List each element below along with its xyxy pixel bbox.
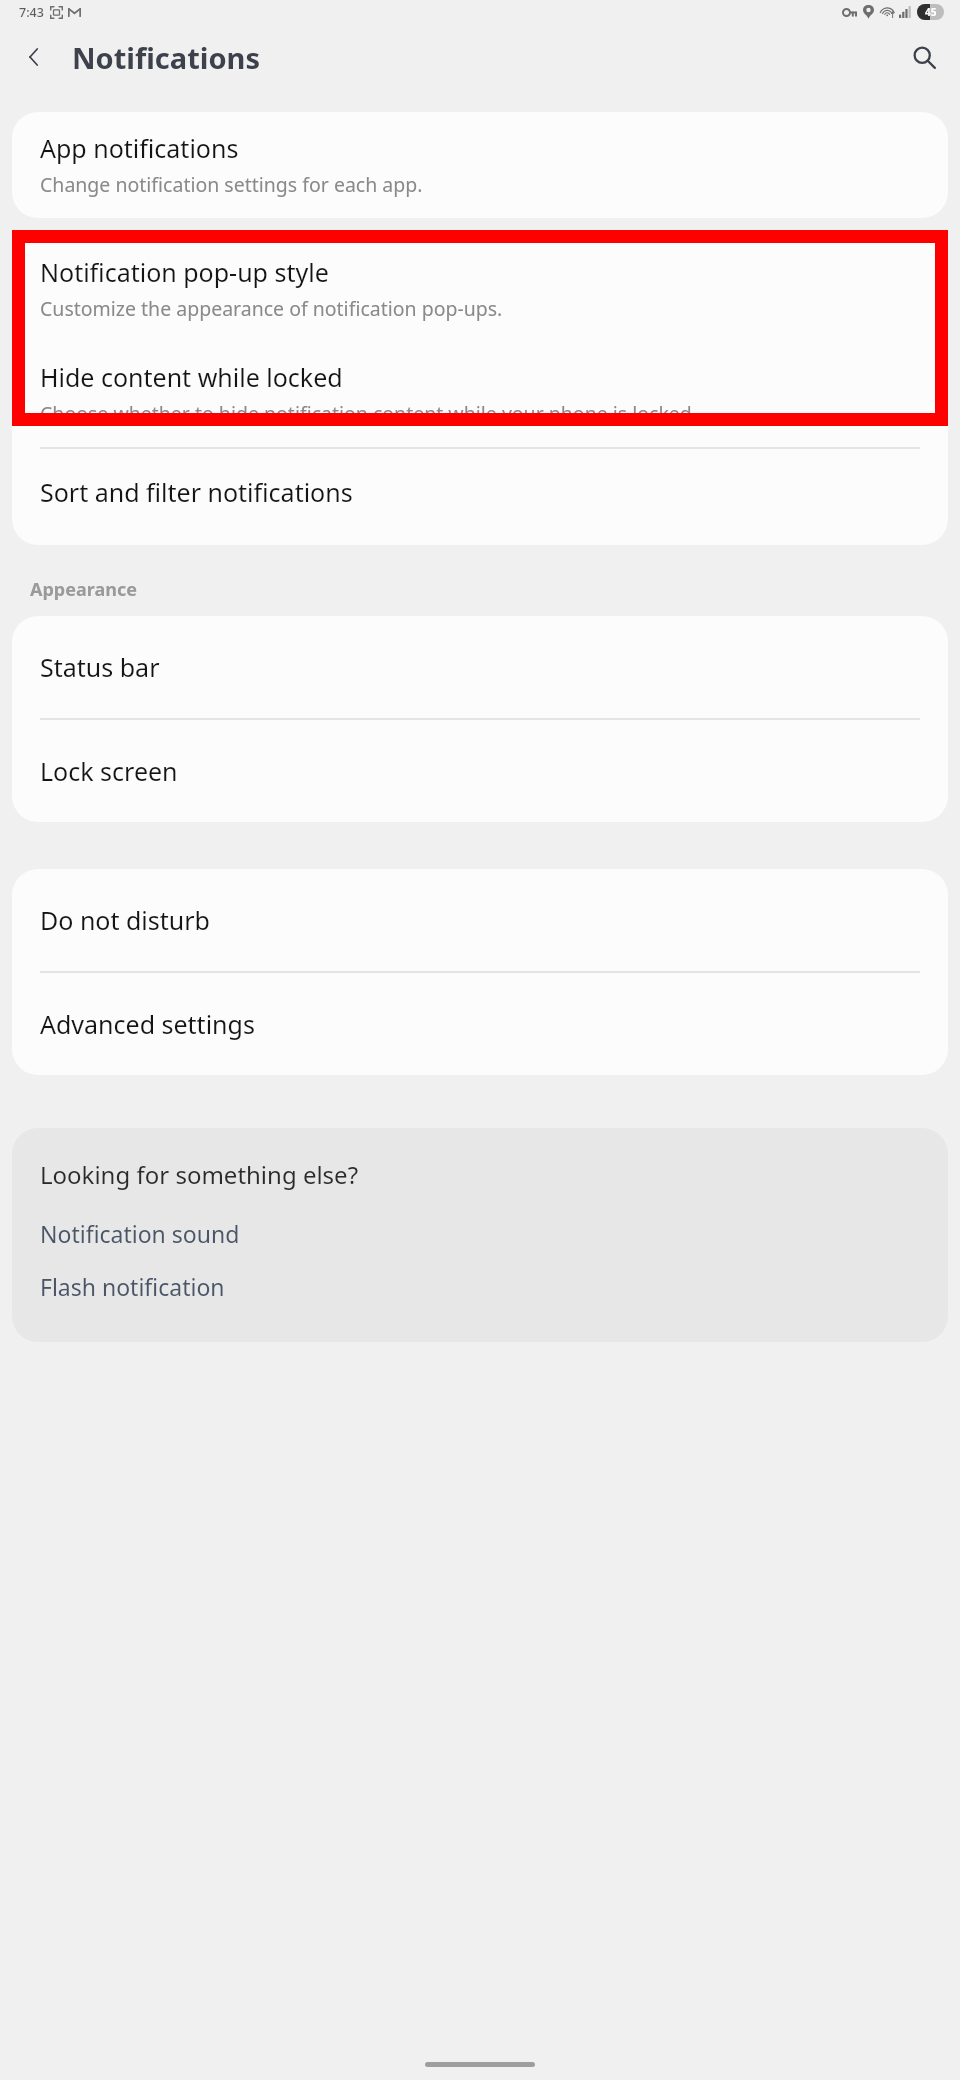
button[interactable]: Flash notification	[40, 1271, 948, 1302]
staticText: Hide content while locked	[40, 360, 343, 394]
button[interactable]: Search	[900, 33, 948, 81]
staticText: Flash notification	[40, 1271, 225, 1302]
button[interactable]: Lock screen	[12, 720, 948, 822]
staticText: App notifications	[40, 131, 239, 165]
staticText: Notification pop-up style	[40, 255, 329, 289]
button[interactable]: Do not disturb	[12, 869, 948, 971]
button[interactable]: Hide content while locked	[12, 344, 948, 447]
staticText: Change notification settings for each ap…	[40, 171, 423, 198]
staticText: Sort and filter notifications	[40, 475, 353, 509]
staticText: Customize the appearance of notification…	[40, 295, 503, 322]
button[interactable]: App notifications	[12, 112, 948, 218]
button[interactable]: Sort and filter notifications	[12, 449, 948, 545]
button[interactable]: Status bar	[12, 616, 948, 718]
staticText: Notifications	[72, 38, 260, 77]
staticText: Choose whether to hide notification cont…	[40, 400, 698, 427]
staticText: Looking for something else?	[40, 1158, 359, 1191]
staticText: 45	[925, 5, 937, 19]
staticText: Lock screen	[40, 754, 178, 788]
staticText: 7:43	[19, 4, 44, 21]
staticText: Advanced settings	[40, 1007, 255, 1041]
staticText: Status bar	[40, 650, 160, 684]
button[interactable]: Back	[10, 33, 58, 81]
button[interactable]: Advanced settings	[12, 973, 948, 1075]
staticText: Notification sound	[40, 1218, 240, 1249]
button[interactable]: Notification sound	[40, 1218, 948, 1249]
staticText: Do not disturb	[40, 903, 210, 937]
button[interactable]: Notification pop-up style	[12, 233, 948, 344]
staticText: Appearance	[30, 577, 137, 602]
